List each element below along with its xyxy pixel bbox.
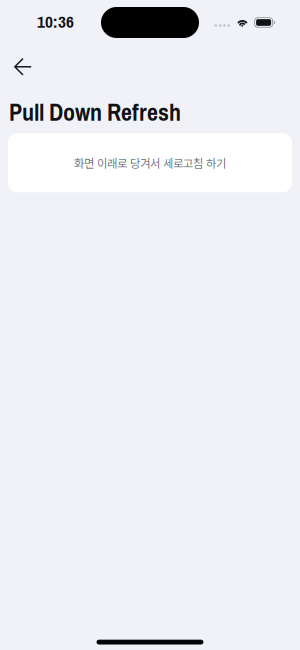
button[interactable]: Back: [0, 45, 44, 81]
staticText: 10:36: [37, 10, 74, 33]
staticText: 화면 이래로 당겨서 세로고침 하기: [74, 155, 226, 171]
staticText: Pull Down Refresh: [9, 96, 181, 128]
